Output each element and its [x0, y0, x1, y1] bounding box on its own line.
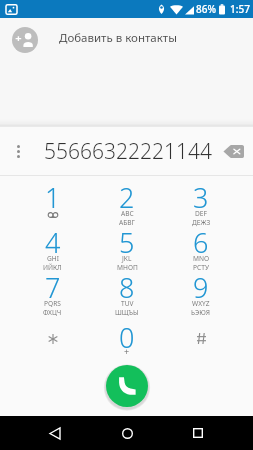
button[interactable]: 5 — [90, 221, 164, 266]
staticText: 0 — [119, 319, 135, 356]
button[interactable]: 1 — [15, 176, 90, 221]
staticText: 3 — [193, 179, 209, 216]
staticText: 1 — [45, 179, 61, 216]
staticText: 2 — [119, 179, 135, 216]
button[interactable]: 8 — [90, 266, 164, 311]
staticText: ABC — [121, 209, 134, 218]
button[interactable]: 7 — [15, 266, 90, 311]
staticText: WXYZ — [192, 299, 210, 308]
button[interactable]: 6 — [164, 221, 238, 266]
staticText: 5 — [119, 224, 135, 261]
button[interactable] — [15, 311, 90, 361]
staticText: АБВГ — [119, 218, 135, 227]
button[interactable]: Call — [106, 365, 148, 407]
button[interactable]: 2 — [90, 176, 164, 221]
staticText: 9 — [193, 269, 209, 306]
button[interactable] — [164, 311, 238, 361]
staticText: РСТУ — [193, 263, 209, 272]
button[interactable]: Recents — [181, 416, 215, 450]
button[interactable]: Backspace — [213, 127, 253, 175]
staticText: 86% — [196, 2, 216, 16]
staticText: TUV — [121, 299, 134, 308]
button[interactable]: 0 — [90, 311, 164, 361]
staticText: + — [124, 345, 130, 357]
button[interactable]: More options — [0, 127, 36, 175]
staticText: ШЩЪЫ — [115, 308, 139, 317]
button[interactable]: 9 — [164, 266, 238, 311]
staticText: GHI — [47, 254, 59, 263]
button[interactable]: 3 — [164, 176, 238, 221]
staticText: МНОП — [117, 263, 138, 272]
staticText: 1:57 — [230, 2, 250, 16]
staticText: PQRS — [44, 299, 61, 308]
staticText: MNO — [193, 254, 210, 263]
staticText: 7 — [45, 269, 61, 306]
button[interactable]: Back — [38, 416, 72, 450]
staticText: ФХЦЧ — [43, 308, 62, 317]
button[interactable]: Добавить в контакты — [0, 18, 253, 62]
staticText: 8 — [119, 269, 135, 306]
staticText: ИЙКЛ — [43, 263, 62, 272]
staticText: Добавить в контакты — [59, 30, 177, 46]
staticText: 55666322221144 — [44, 137, 212, 166]
button[interactable]: 4 — [15, 221, 90, 266]
staticText: ЬЭЮЯ — [191, 308, 211, 317]
staticText: DEF — [195, 209, 207, 218]
staticText: JKL — [122, 254, 132, 263]
staticText: 6 — [193, 224, 209, 261]
staticText: ДЕЖЗ — [192, 218, 211, 227]
staticText: 4 — [45, 224, 61, 261]
button[interactable]: Home — [110, 416, 144, 450]
